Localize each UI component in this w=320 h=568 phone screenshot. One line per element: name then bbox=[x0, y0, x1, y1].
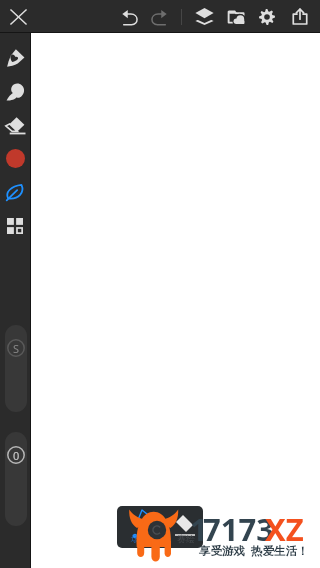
button[interactable]: Opacity bbox=[5, 432, 27, 526]
staticText: S bbox=[13, 341, 20, 356]
button[interactable]: Share bbox=[287, 3, 313, 30]
button[interactable]: Eraser bbox=[0, 109, 30, 141]
button[interactable]: Close bbox=[5, 3, 32, 31]
button[interactable]: Brush bbox=[0, 41, 30, 73]
staticText: 赛绘 bbox=[177, 533, 195, 544]
button[interactable]: Settings bbox=[254, 3, 280, 30]
staticText: 场景 bbox=[131, 533, 149, 544]
button[interactable]: Palette bbox=[0, 176, 30, 208]
staticText: 享受游戏 热爱生活！ bbox=[199, 543, 309, 559]
button[interactable]: Color bbox=[0, 142, 30, 174]
staticText: 0 bbox=[13, 448, 20, 463]
button[interactable]: Redo bbox=[145, 3, 171, 30]
button[interactable]: Undo bbox=[117, 3, 143, 30]
button[interactable]: Layer grid bbox=[0, 210, 30, 242]
staticText: XZ bbox=[265, 508, 304, 550]
button[interactable]: Layers bbox=[191, 3, 217, 30]
button[interactable]: Smudge bbox=[0, 75, 30, 107]
button[interactable]: Open file bbox=[223, 3, 249, 30]
staticText: 7173 bbox=[203, 508, 274, 550]
staticText: 1 bbox=[190, 508, 208, 550]
button[interactable]: Advertisement bbox=[117, 506, 203, 548]
button[interactable]: Brush size bbox=[5, 325, 27, 412]
